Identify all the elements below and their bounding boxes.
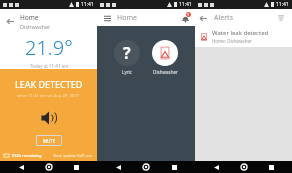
staticText: 1 bbox=[187, 12, 190, 17]
staticText: 11:41 bbox=[179, 1, 192, 8]
staticText: ? bbox=[123, 42, 131, 64]
button[interactable]: Sound bbox=[38, 107, 60, 129]
staticText: Home bbox=[20, 13, 39, 22]
staticText: Dishwasher bbox=[20, 23, 51, 30]
button[interactable]: Filter bbox=[274, 11, 288, 25]
button[interactable]: Back bbox=[14, 161, 28, 173]
button[interactable]: Back bbox=[111, 161, 125, 173]
button[interactable]: Water leak detected bbox=[195, 26, 292, 47]
staticText: Alerts bbox=[214, 13, 233, 23]
staticText: Next update 5:41 am bbox=[53, 153, 93, 158]
button[interactable]: Home bbox=[42, 161, 56, 173]
staticText: Today at 11:41 am bbox=[30, 63, 69, 69]
button[interactable]: Dishwasher leak alert bbox=[150, 38, 180, 77]
button[interactable]: Lyric device bbox=[112, 38, 142, 77]
button[interactable]: MUTE bbox=[36, 135, 62, 146]
staticText: 21.9° bbox=[25, 34, 73, 61]
staticText: Home bbox=[117, 13, 137, 23]
button[interactable]: Recents bbox=[264, 161, 278, 173]
button[interactable]: Back bbox=[195, 10, 211, 26]
staticText: LEAK DETECTED bbox=[15, 78, 83, 90]
staticText: Lyric bbox=[122, 69, 132, 75]
staticText: since 11:41 am on Aug 29, 2017 bbox=[17, 93, 80, 99]
staticText: 11:41 bbox=[276, 1, 289, 8]
button[interactable]: Menu bbox=[101, 12, 113, 24]
staticText: Home: Dishwasher bbox=[212, 38, 252, 44]
button[interactable]: Notifications bbox=[178, 11, 192, 25]
button[interactable]: Home bbox=[237, 161, 251, 173]
button[interactable]: Recents bbox=[69, 161, 83, 173]
button[interactable]: Back bbox=[0, 11, 20, 31]
button[interactable]: Back bbox=[209, 161, 223, 173]
staticText: Water leak detected bbox=[212, 29, 269, 37]
staticText: MUTE bbox=[43, 138, 56, 144]
staticText: 11:41 bbox=[81, 1, 94, 8]
staticText: Dishwasher bbox=[153, 69, 178, 75]
button[interactable]: Home bbox=[139, 161, 153, 173]
staticText: 100% remaining bbox=[11, 153, 42, 158]
button[interactable]: Recents bbox=[167, 161, 181, 173]
